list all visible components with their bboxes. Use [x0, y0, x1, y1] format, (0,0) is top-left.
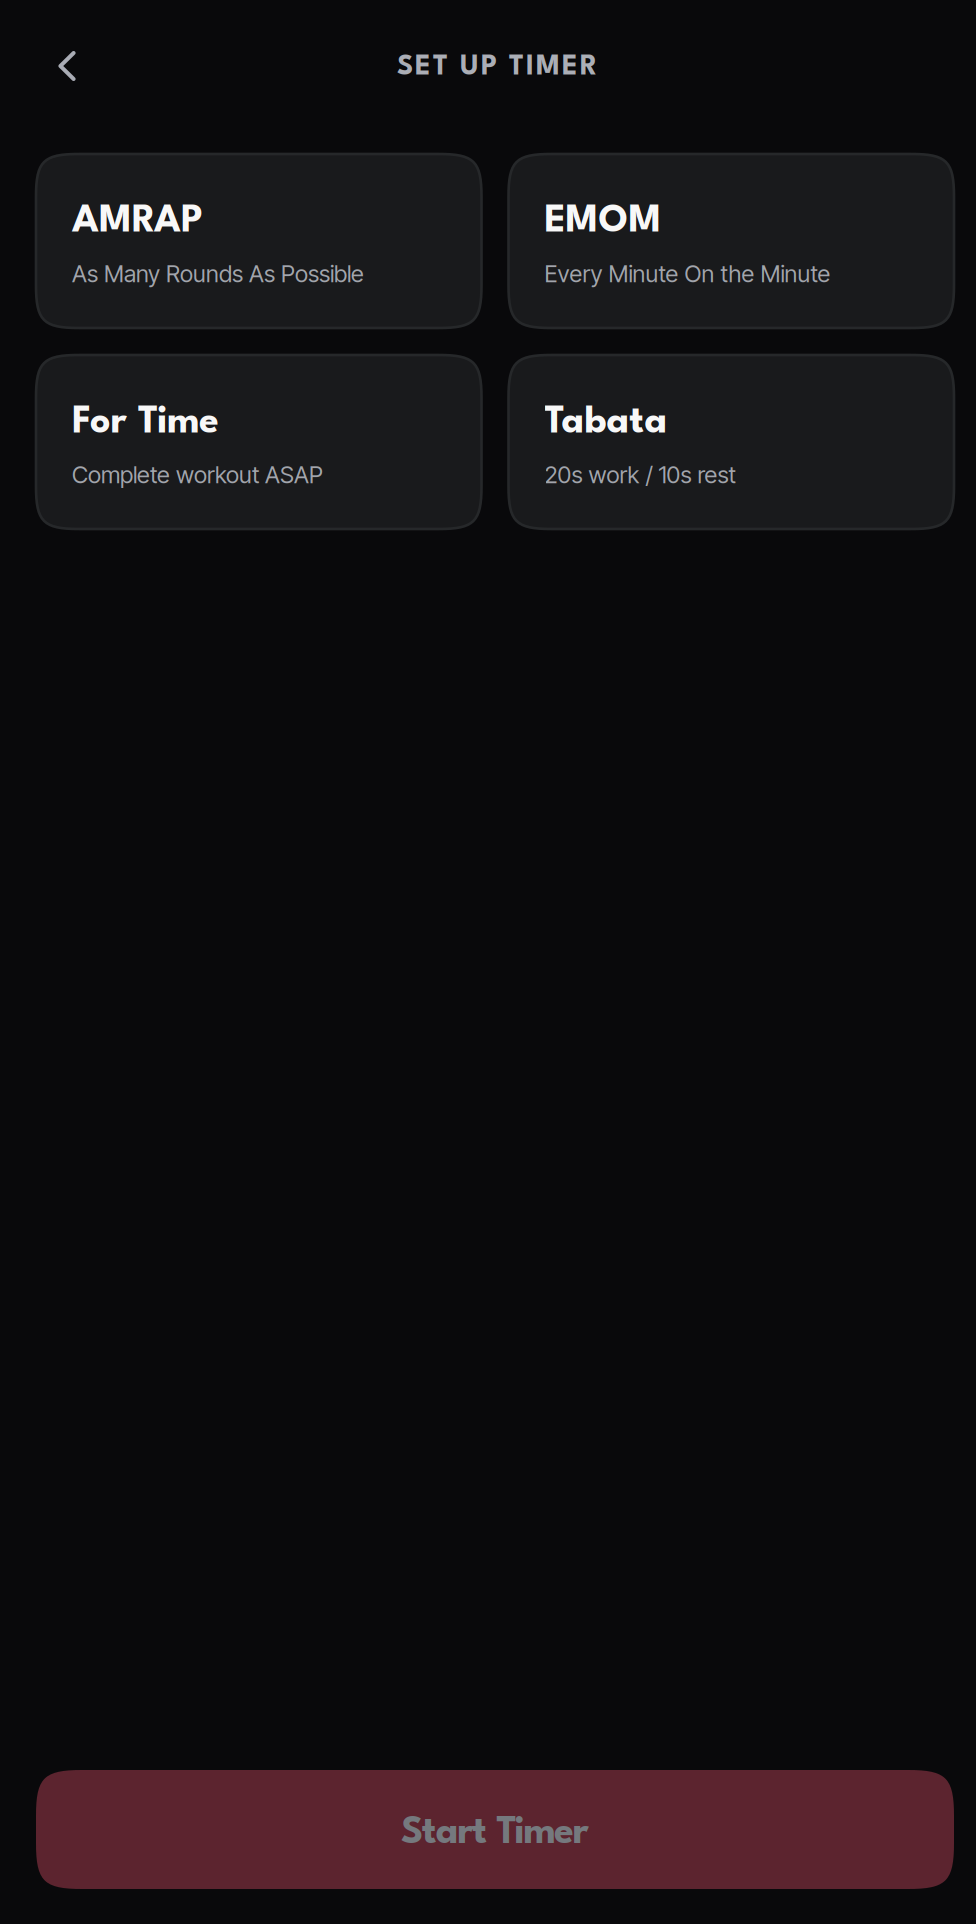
staticText: EMOM [544, 204, 661, 240]
staticText: Complete workout ASAP [72, 460, 323, 489]
staticText: 20s work / 10s rest [544, 460, 735, 489]
button[interactable]: Back [29, 28, 105, 104]
staticText: For Time [72, 405, 219, 441]
staticText: Start Timer [401, 1815, 589, 1852]
staticText: As Many Rounds As Possible [72, 259, 364, 288]
staticText: Tabata [544, 405, 667, 441]
button[interactable]: AMRAP [36, 154, 481, 328]
button[interactable]: Tabata [508, 355, 954, 529]
staticText: SET UP TIMER [397, 54, 597, 81]
staticText: AMRAP [72, 204, 203, 240]
button[interactable]: Start Timer [36, 1770, 954, 1889]
staticText: Every Minute On the Minute [544, 259, 830, 288]
button[interactable]: For Time [36, 355, 481, 529]
button[interactable]: EMOM [508, 154, 954, 328]
